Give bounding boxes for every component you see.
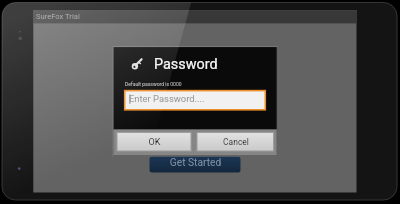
staticText: OK (117, 137, 192, 151)
staticText: Password (154, 56, 218, 73)
staticText: Get Started (150, 157, 241, 173)
staticText: SureFox (150, 58, 223, 81)
button[interactable]: OK (117, 132, 192, 152)
staticText: Enter Password.... (129, 93, 205, 104)
staticText: Default password is 0000 (125, 81, 182, 87)
button[interactable]: Cancel (197, 132, 275, 152)
staticText: SureFox Trial (36, 12, 80, 21)
button[interactable]: Get Started (150, 157, 241, 173)
staticText: Browser (196, 80, 229, 91)
staticText: Cancel (197, 137, 275, 151)
